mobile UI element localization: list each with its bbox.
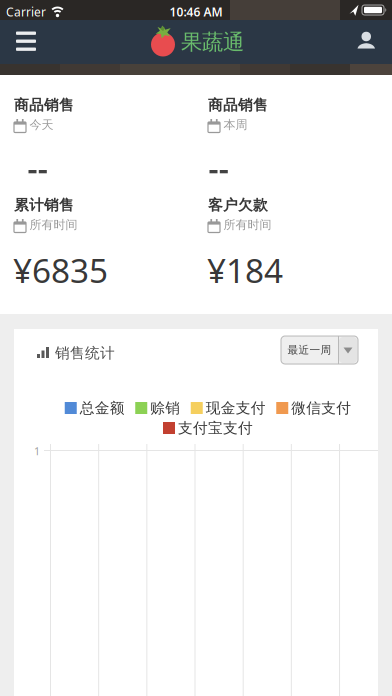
staticText: 微信支付 [291,399,351,417]
staticText: 本周 [223,117,247,132]
staticText: 1 [34,444,40,458]
staticText: 现金支付 [206,399,266,417]
staticText: 累计销售 [14,196,74,214]
staticText: 所有时间 [29,217,77,232]
staticText: Carrier [6,4,46,20]
staticText: 客户欠款 [208,196,268,214]
button[interactable]: Menu [0,20,52,64]
staticText: 商品销售 [208,96,268,114]
staticText: 商品销售 [14,96,74,114]
button[interactable]: Account [348,20,392,696]
staticText: 支付宝支付 [178,419,253,437]
staticText: 赊销 [150,399,180,417]
staticText: 果蔬通 [181,29,244,55]
staticText: ¥184 [207,248,283,292]
staticText: ¥6835 [13,248,108,292]
staticText: 所有时间 [223,217,271,232]
staticText: 今天 [29,117,53,132]
staticText: 销售统计 [55,344,115,362]
staticText: 总金额 [80,399,125,417]
button[interactable]: 最近一周 [281,336,358,364]
staticText: 最近一周 [287,343,331,357]
staticText: 10:46 AM [169,4,222,20]
